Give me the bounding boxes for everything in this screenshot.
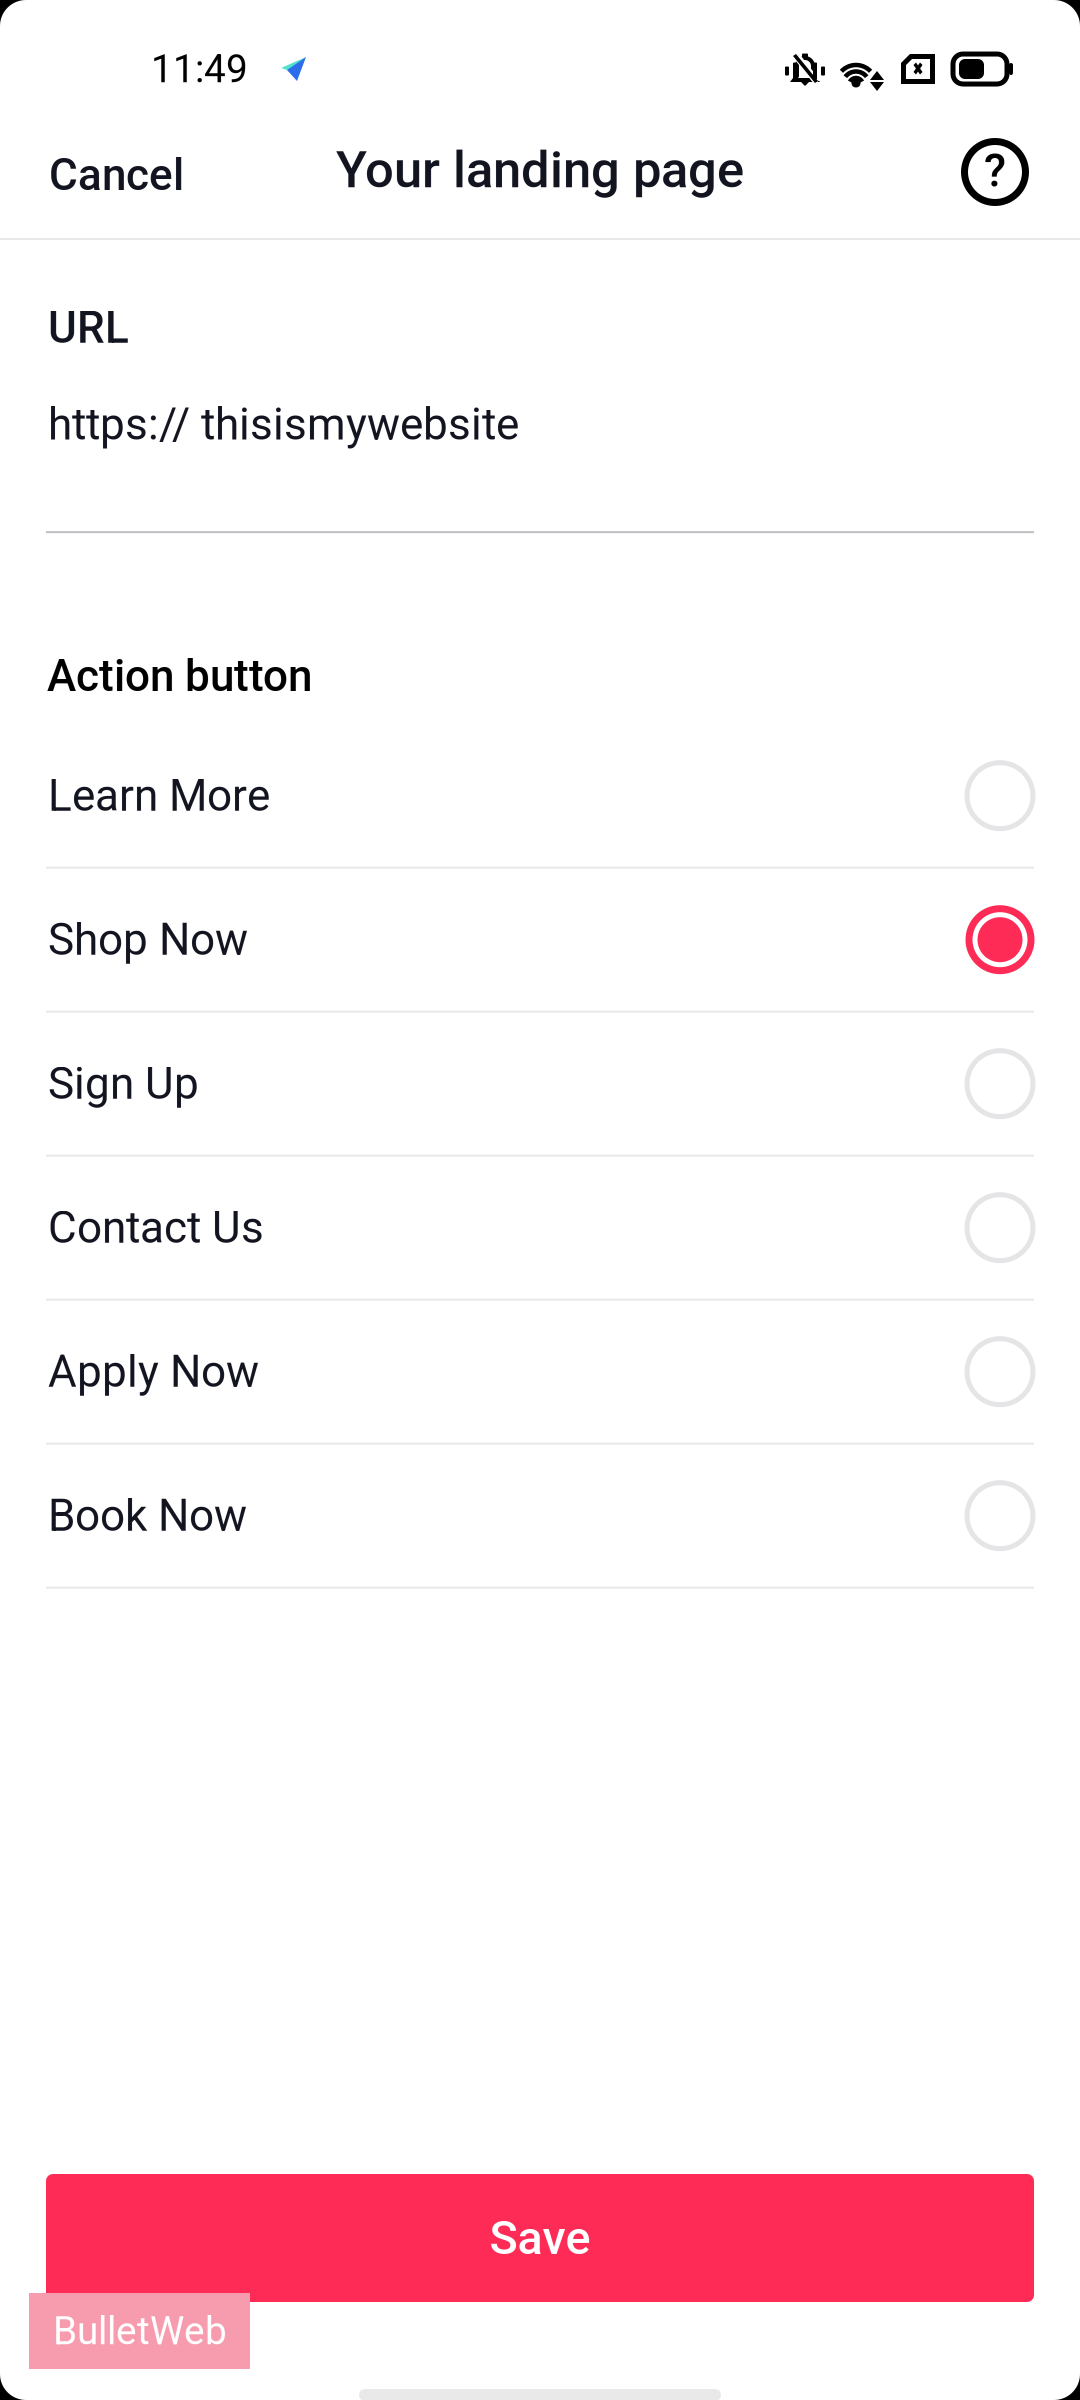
staticText: Learn More xyxy=(48,770,270,821)
staticText: ? xyxy=(984,144,1006,197)
button[interactable]: Apply Now xyxy=(0,1301,1080,1445)
staticText: Action button xyxy=(47,650,312,702)
staticText: BulletWeb xyxy=(53,2308,227,2354)
staticText: Apply Now xyxy=(48,1346,259,1397)
staticText: Cancel xyxy=(49,149,184,201)
staticText: Save xyxy=(489,2211,590,2265)
staticText: Contact Us xyxy=(48,1202,264,1253)
staticText: https:// thisismywebsite xyxy=(48,399,519,450)
staticText: Sign Up xyxy=(48,1058,199,1109)
button[interactable]: Book Now xyxy=(0,1445,1080,1589)
button[interactable]: Learn More xyxy=(0,725,1080,869)
button[interactable]: Help xyxy=(930,112,1080,238)
staticText: 11:49 xyxy=(151,46,248,92)
staticText: URL xyxy=(48,302,129,354)
button[interactable]: Contact Us xyxy=(0,1157,1080,1301)
staticText: Book Now xyxy=(48,1490,247,1541)
button[interactable]: Save xyxy=(46,2174,1034,2302)
staticText: Your landing page xyxy=(336,140,744,200)
button[interactable]: Sign Up xyxy=(0,1013,1080,1157)
button[interactable]: Shop Now xyxy=(0,869,1080,1013)
staticText: Shop Now xyxy=(48,914,248,965)
button[interactable]: Cancel xyxy=(0,112,233,238)
